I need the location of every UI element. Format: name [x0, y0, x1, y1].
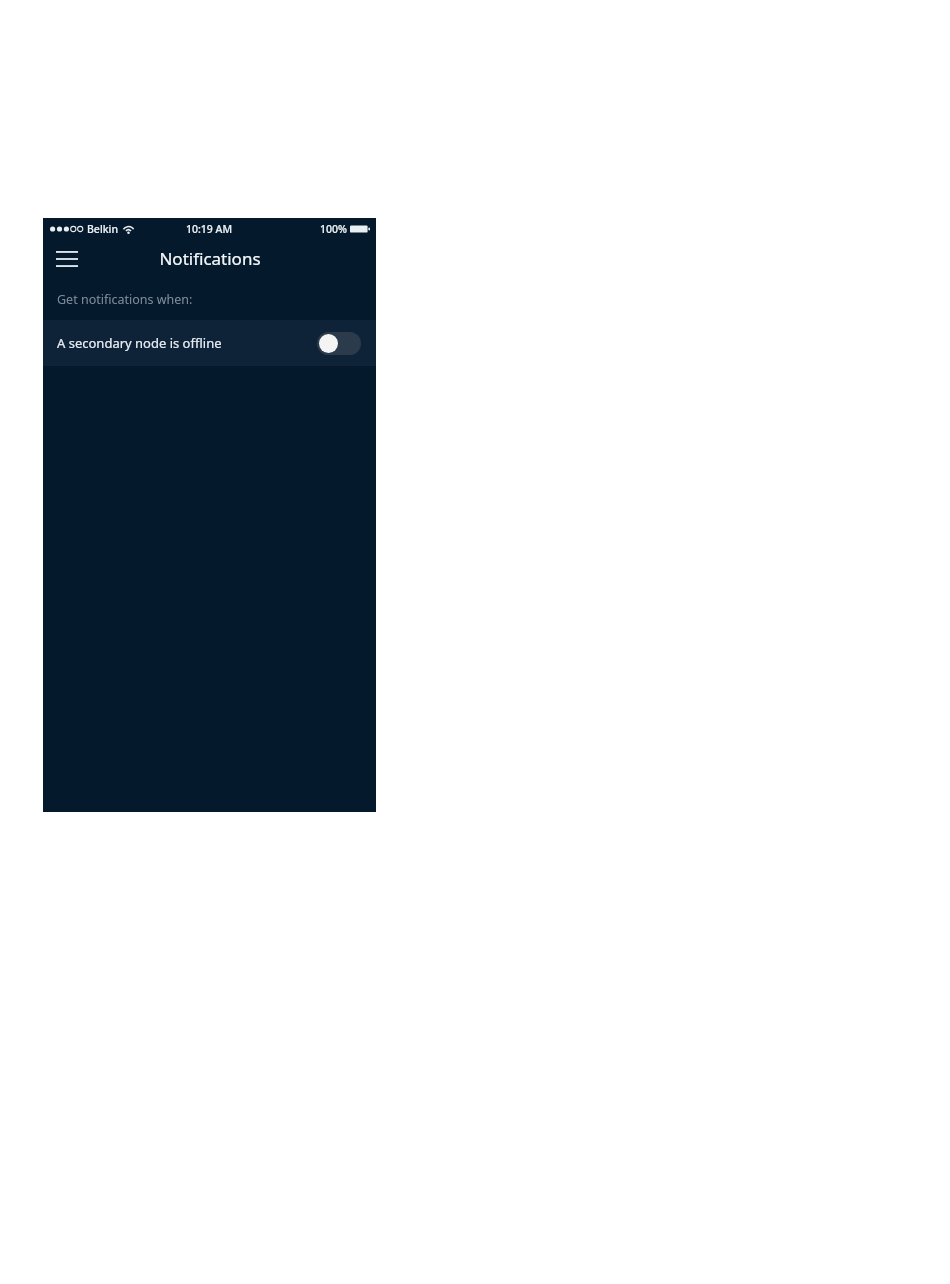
button[interactable]: Open navigation menu — [50, 242, 84, 276]
staticText: 100% — [320, 222, 347, 236]
staticText: 10:19 AM — [186, 222, 233, 236]
staticText: Get notifications when: — [57, 291, 193, 308]
button[interactable]: A secondary node is offline — [43, 320, 376, 366]
button[interactable]: A secondary node is offline toggle — [317, 332, 361, 355]
staticText: A secondary node is offline — [57, 334, 317, 352]
staticText: Belkin — [87, 222, 119, 236]
staticText: Notifications — [159, 247, 261, 270]
